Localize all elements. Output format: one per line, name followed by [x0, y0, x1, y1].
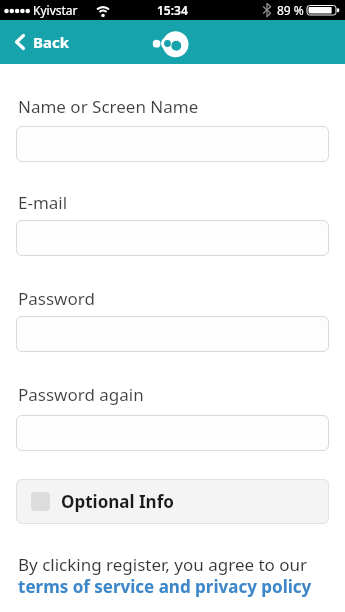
staticText: Optional Info	[61, 490, 174, 513]
staticText: Password	[18, 287, 95, 310]
staticText: 89 %	[277, 2, 304, 18]
button[interactable]	[16, 415, 329, 451]
staticText: Back	[33, 32, 70, 52]
staticText: Kyivstar	[33, 2, 78, 18]
button[interactable]: Back	[0, 32, 70, 52]
staticText: By clicking register, you agree to our	[18, 553, 308, 576]
button[interactable]	[16, 316, 329, 352]
button[interactable]: Optional Info	[16, 479, 329, 524]
button[interactable]	[16, 220, 329, 256]
staticText: 15:34	[157, 2, 188, 18]
staticText: E-mail	[18, 191, 68, 214]
staticText: Name or Screen Name	[18, 95, 199, 118]
staticText: Password again	[18, 383, 144, 406]
button[interactable]: terms of service and privacy policy	[18, 575, 312, 598]
button[interactable]	[16, 126, 329, 162]
